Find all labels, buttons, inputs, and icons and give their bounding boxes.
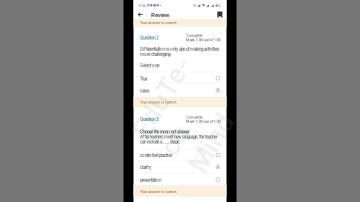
staticText: Mark 1.00 out of 1.00	[185, 37, 220, 42]
staticText: 9:26	[138, 3, 145, 8]
staticText: controlled practice	[140, 153, 172, 158]
staticText: Mark 1.00 out of 1.00	[185, 119, 220, 124]
button[interactable]: Back	[136, 10, 145, 19]
staticText: Question 2	[140, 35, 159, 41]
staticText: Complete	[185, 33, 202, 38]
staticText: Your answer is correct.	[140, 20, 177, 25]
staticText: False	[140, 88, 149, 94]
staticText: Your answer is correct.	[140, 189, 177, 194]
staticText: clarify	[140, 165, 151, 170]
staticText: Differentiation is only about making act…	[140, 47, 219, 52]
staticText: Your answer is correct.	[140, 100, 177, 104]
button[interactable]: Bookmark	[215, 10, 225, 19]
staticText: True	[140, 76, 147, 81]
button[interactable]: False	[133, 0, 226, 202]
button[interactable]: True	[133, 0, 226, 202]
button[interactable]: presentation	[133, 0, 226, 202]
staticText: Complete	[185, 115, 202, 119]
staticText: Question 3	[140, 117, 159, 122]
button[interactable]: controlled practice	[133, 0, 226, 202]
staticText: more challenging.	[140, 52, 171, 57]
staticText: presentation	[140, 178, 161, 183]
staticText: can include a ___ stage.	[140, 139, 180, 145]
staticText: After learners meet new language, the te…	[140, 134, 217, 140]
staticText: Review	[151, 11, 169, 18]
staticText: Choose the incorrect answer	[140, 129, 190, 134]
button[interactable]: clarify	[133, 0, 226, 202]
staticText: Select one:	[140, 63, 160, 68]
staticText: EduTech Mind	[145, 66, 234, 164]
